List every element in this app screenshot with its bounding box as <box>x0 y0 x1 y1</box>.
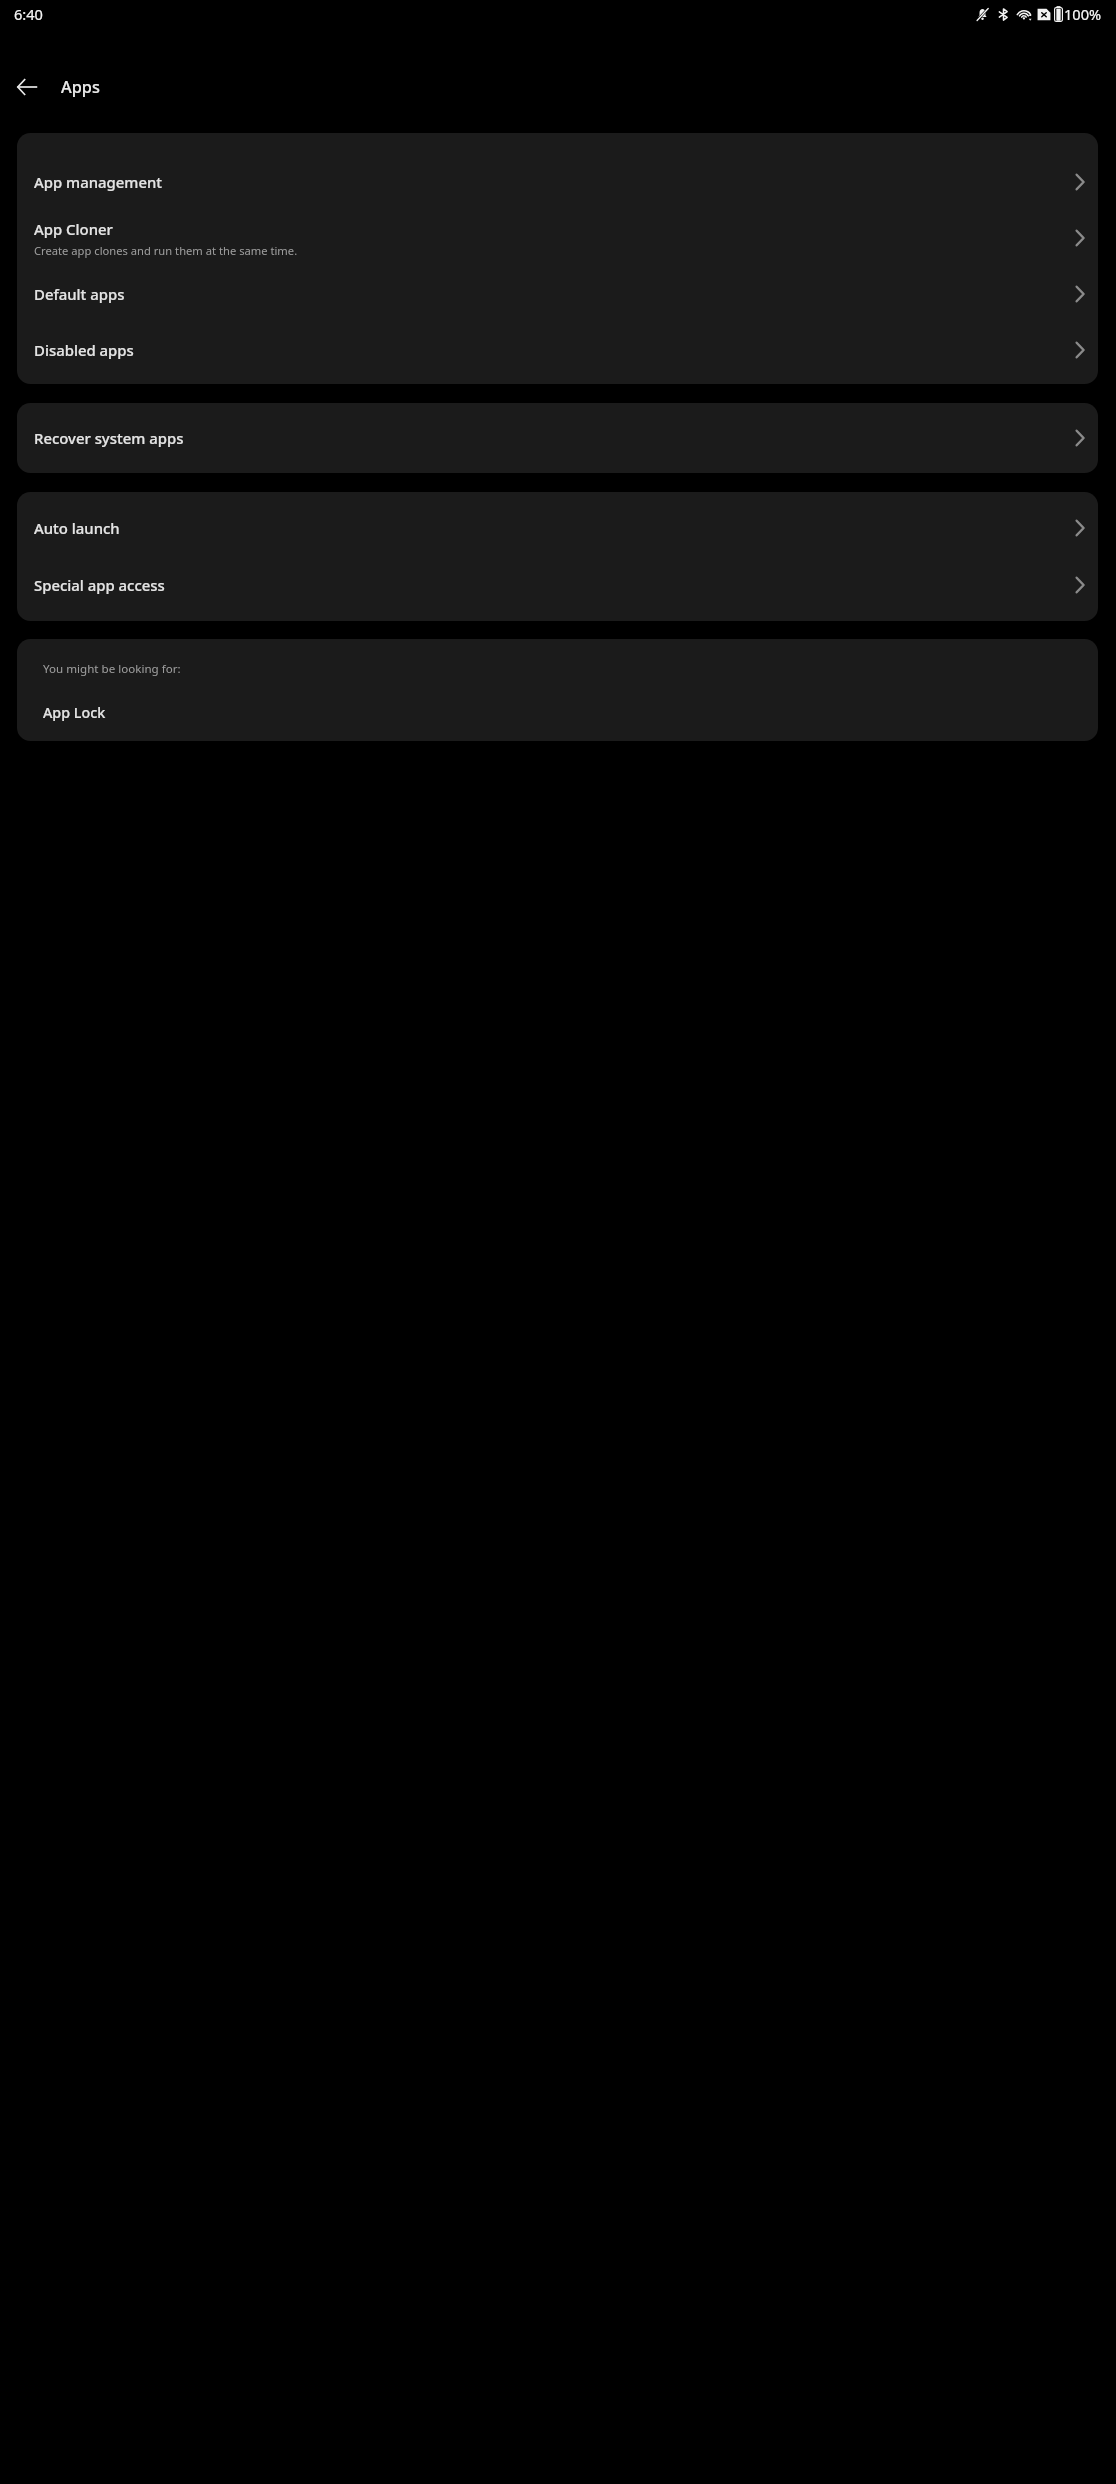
button[interactable]: Back <box>12 72 42 102</box>
staticText: App Cloner <box>34 219 113 239</box>
button[interactable]: App Cloner <box>17 210 1098 266</box>
button[interactable]: Auto launch <box>17 502 1098 554</box>
button[interactable]: App Lock <box>17 701 1098 724</box>
staticText: Auto launch <box>34 518 1074 538</box>
button[interactable]: Recover system apps <box>17 403 1098 473</box>
button[interactable]: Disabled apps <box>17 322 1098 378</box>
button[interactable]: Special app access <box>17 559 1098 611</box>
staticText: App management <box>34 172 1074 192</box>
staticText: Recover system apps <box>34 428 1074 448</box>
staticText: You might be looking for: <box>43 661 181 677</box>
staticText: 6:40 <box>14 4 43 24</box>
staticText: Create app clones and run them at the sa… <box>34 243 298 258</box>
staticText: Default apps <box>34 284 1074 304</box>
staticText: Special app access <box>34 575 1074 595</box>
button[interactable]: Default apps <box>17 266 1098 322</box>
staticText: 100% <box>1064 4 1102 24</box>
staticText: Apps <box>61 76 100 98</box>
button[interactable]: App management <box>17 154 1098 210</box>
staticText: Disabled apps <box>34 340 1074 360</box>
staticText: App Lock <box>43 703 106 722</box>
